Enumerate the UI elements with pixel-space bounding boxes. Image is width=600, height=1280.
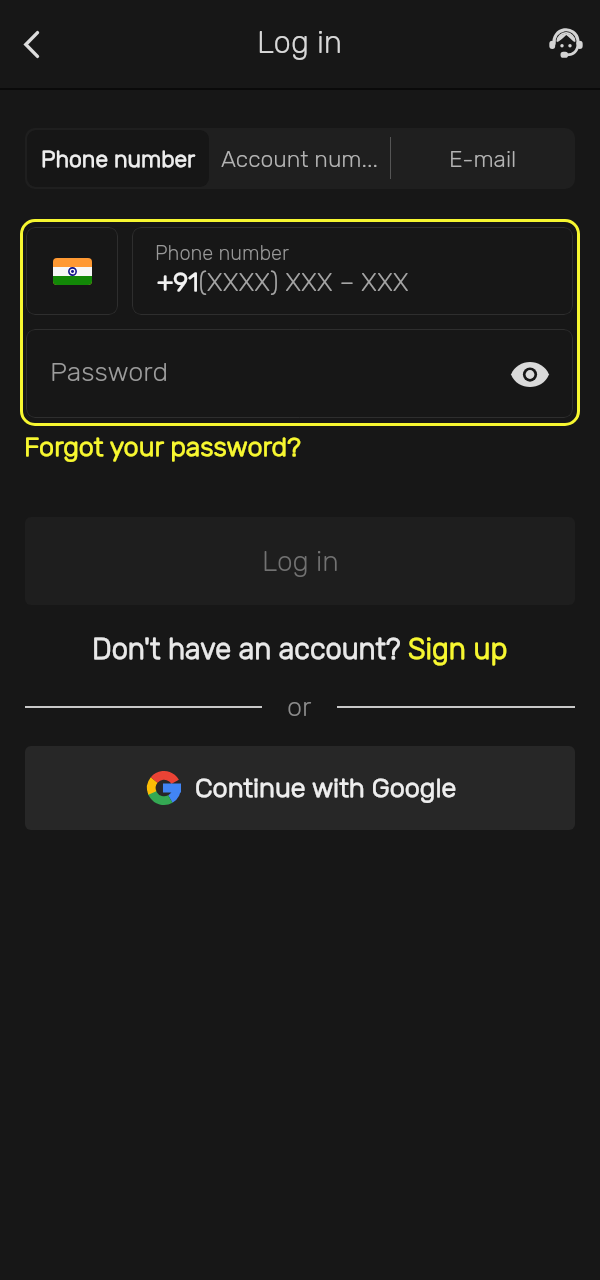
button[interactable]: Account num...: [209, 128, 390, 189]
staticText: Account num...: [221, 145, 378, 172]
staticText: Phone number: [41, 145, 196, 172]
button[interactable]: Log in: [25, 517, 575, 605]
button[interactable]: Phone number: [27, 130, 209, 187]
button[interactable]: Forgot your password?: [24, 431, 301, 463]
button[interactable]: Phone number: [132, 227, 573, 315]
button[interactable]: Customer support: [540, 18, 592, 70]
button[interactable]: Continue with Google: [25, 746, 575, 830]
button[interactable]: Password: [26, 329, 573, 418]
staticText: Password: [50, 356, 169, 388]
button[interactable]: Select country code: [26, 227, 118, 315]
button[interactable]: E-mail: [391, 128, 575, 189]
staticText: +91(XXXX) XXX – XXX: [157, 267, 409, 298]
staticText: Log in: [262, 545, 339, 578]
button[interactable]: Show password: [508, 352, 552, 396]
staticText: E-mail: [449, 145, 517, 172]
staticText: or: [287, 691, 312, 723]
button[interactable]: Sign up: [408, 632, 508, 666]
staticText: Log in: [257, 24, 343, 61]
button[interactable]: Back: [6, 19, 56, 69]
staticText: Phone number: [155, 241, 289, 265]
staticText: Continue with Google: [195, 772, 457, 804]
staticText: Don't have an account?: [92, 632, 408, 666]
